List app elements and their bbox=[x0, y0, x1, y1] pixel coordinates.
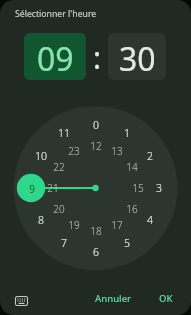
staticText: 18 bbox=[90, 224, 102, 238]
staticText: 17 bbox=[111, 218, 123, 232]
button[interactable] bbox=[9, 289, 33, 313]
staticText: 10 bbox=[35, 149, 47, 163]
staticText: Annuler bbox=[95, 292, 132, 305]
staticText: 2 bbox=[147, 149, 153, 163]
staticText: 13 bbox=[111, 144, 123, 158]
button[interactable]: 30 bbox=[108, 33, 166, 80]
staticText: 16 bbox=[126, 202, 138, 216]
staticText: 0 bbox=[93, 118, 99, 132]
staticText: 7 bbox=[61, 236, 67, 250]
staticText: 21 bbox=[47, 181, 59, 195]
staticText: 15 bbox=[132, 181, 144, 195]
staticText: OK bbox=[159, 292, 173, 305]
staticText: 9 bbox=[29, 182, 35, 196]
staticText: 09 bbox=[37, 37, 74, 80]
staticText: 6 bbox=[93, 245, 99, 259]
staticText: 3 bbox=[156, 181, 162, 195]
button[interactable]: OK bbox=[150, 288, 182, 308]
staticText: Sélectionner l'heure bbox=[15, 8, 97, 20]
staticText: 11 bbox=[58, 126, 70, 140]
button[interactable]: Annuler bbox=[87, 288, 140, 308]
staticText: 8 bbox=[38, 213, 44, 227]
staticText: 14 bbox=[126, 160, 138, 174]
staticText: 23 bbox=[68, 144, 80, 158]
button[interactable]: 09 bbox=[24, 33, 86, 80]
staticText: 22 bbox=[53, 160, 65, 174]
staticText: 5 bbox=[124, 236, 130, 250]
staticText: 12 bbox=[90, 139, 102, 153]
staticText: 19 bbox=[68, 218, 80, 232]
staticText: 30 bbox=[119, 37, 156, 80]
staticText: 20 bbox=[53, 202, 65, 216]
staticText: 4 bbox=[147, 213, 153, 227]
staticText: 1 bbox=[124, 126, 130, 140]
staticText: : bbox=[93, 37, 102, 77]
